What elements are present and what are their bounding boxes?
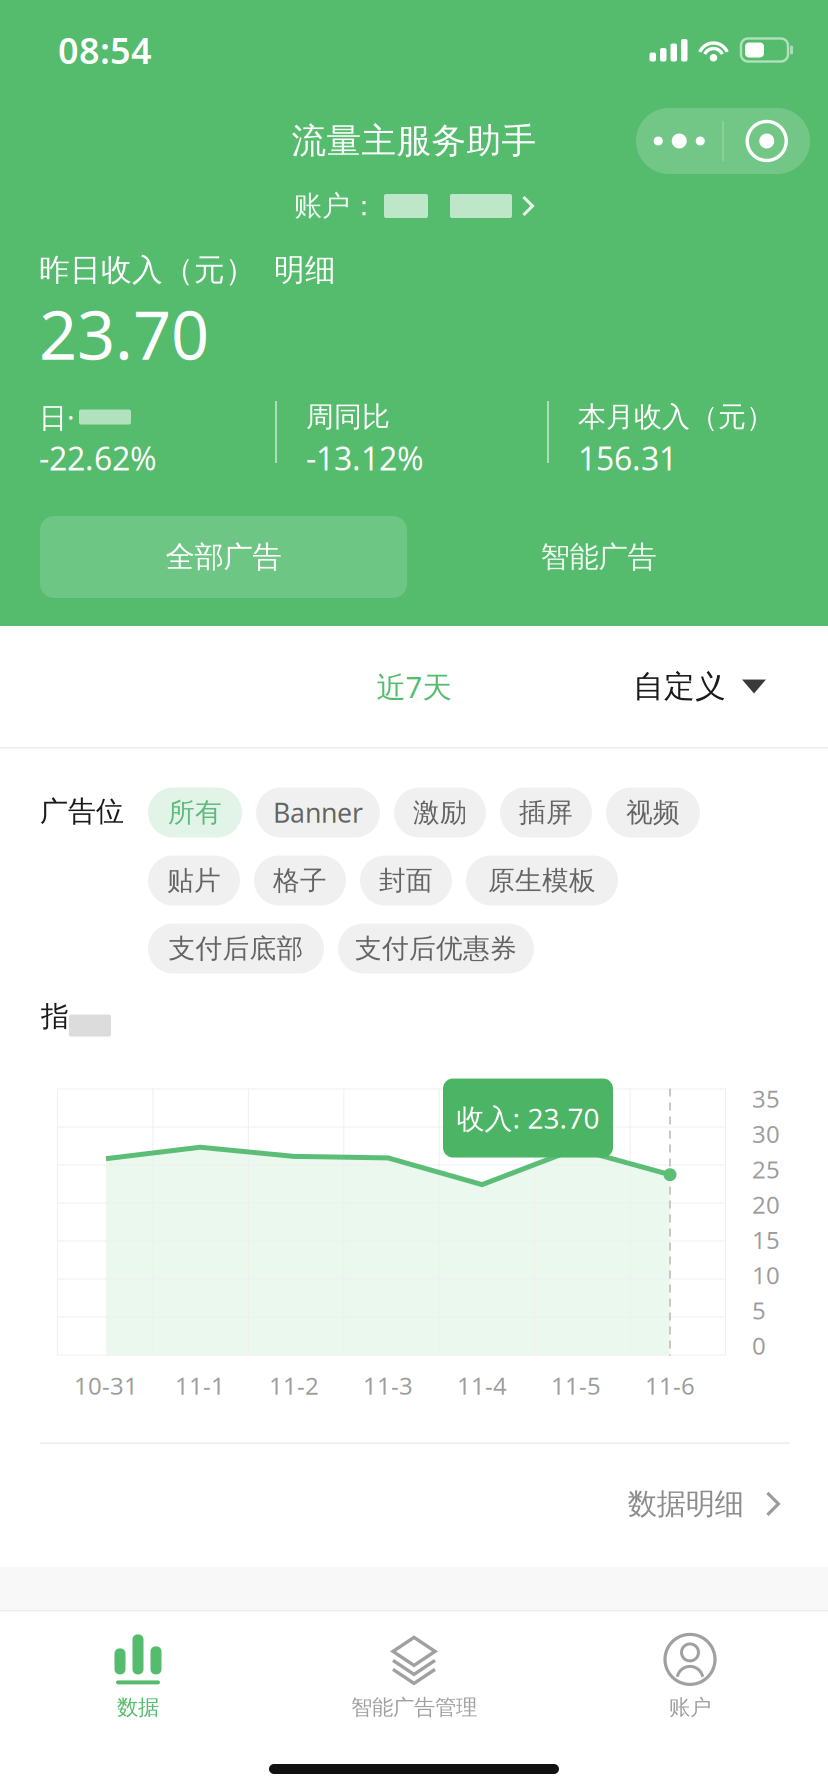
staticText: -22.62% <box>39 437 157 479</box>
staticText: 25 <box>752 1153 780 1185</box>
staticText: 11-4 <box>457 1369 507 1401</box>
button[interactable]: 贴片 <box>148 855 240 905</box>
staticText: 本月收入（元） <box>578 400 774 434</box>
staticText: 15 <box>752 1224 780 1256</box>
staticText: 11-3 <box>363 1369 413 1401</box>
staticText: 0 <box>752 1330 766 1361</box>
button[interactable]: 支付后底部 <box>148 923 324 973</box>
button[interactable]: 原生模板 <box>466 855 618 905</box>
staticText: 数据明细 <box>628 1486 744 1522</box>
button[interactable]: 账户： <box>294 184 534 228</box>
staticText: 明细 <box>274 251 336 289</box>
staticText: Banner <box>273 795 363 830</box>
staticText: 数据 <box>117 1694 159 1721</box>
button[interactable]: 数据 <box>0 1621 276 1733</box>
staticText: 格子 <box>273 864 327 897</box>
button[interactable]: 自定义 <box>633 652 766 721</box>
staticText: 11-5 <box>551 1369 601 1401</box>
staticText: -13.12% <box>306 437 424 479</box>
button[interactable]: 视频 <box>606 787 700 837</box>
button[interactable]: 支付后优惠券 <box>338 923 534 973</box>
staticText: 激励 <box>413 796 467 829</box>
staticText: 35 <box>752 1083 780 1114</box>
staticText: 5 <box>752 1294 766 1326</box>
staticText: 自定义 <box>633 668 726 705</box>
staticText: 日· <box>39 398 75 436</box>
button[interactable]: 插屏 <box>500 787 592 837</box>
button[interactable]: Close mini program <box>724 108 810 174</box>
staticText: 所有 <box>168 796 222 829</box>
staticText: 智能广告管理 <box>351 1694 477 1721</box>
button[interactable]: 所有 <box>148 787 242 837</box>
staticText: 插屏 <box>519 796 573 829</box>
button[interactable]: 激励 <box>394 787 486 837</box>
staticText: 11-1 <box>175 1369 225 1401</box>
staticText: 08:54 <box>58 26 152 74</box>
staticText: 20 <box>752 1188 780 1220</box>
button[interactable]: 全部广告 <box>40 516 407 598</box>
staticText: 贴片 <box>167 864 221 897</box>
staticText: 智能广告 <box>540 539 656 575</box>
staticText: 收入: 23.70 <box>456 1099 599 1137</box>
staticText: 指 <box>41 999 69 1034</box>
button[interactable]: 明细 <box>256 251 342 289</box>
staticText: 支付后底部 <box>168 932 303 965</box>
staticText: 156.31 <box>578 437 677 479</box>
staticText: 10-31 <box>74 1369 138 1401</box>
button[interactable]: 封面 <box>360 855 452 905</box>
staticText: 账户： <box>294 189 378 223</box>
staticText: 原生模板 <box>488 864 596 897</box>
staticText: 全部广告 <box>165 539 281 575</box>
staticText: 广告位 <box>40 794 124 829</box>
staticText: 封面 <box>379 864 433 897</box>
staticText: 昨日收入（元） <box>39 251 256 289</box>
staticText: 流量主服务助手 <box>291 120 536 162</box>
staticText: 视频 <box>626 796 680 829</box>
staticText: 支付后优惠券 <box>355 932 517 965</box>
staticText: 10 <box>752 1259 780 1291</box>
button[interactable]: 格子 <box>254 855 346 905</box>
staticText: 账户 <box>669 1694 711 1721</box>
staticText: 30 <box>752 1118 780 1150</box>
button[interactable]: Banner <box>256 787 380 837</box>
button[interactable]: 智能广告管理 <box>276 1621 552 1733</box>
button[interactable]: 数据明细 <box>0 1444 828 1554</box>
staticText: 11-2 <box>269 1369 319 1401</box>
button[interactable]: More <box>636 108 722 174</box>
button[interactable]: 账户 <box>552 1621 828 1733</box>
staticText: 11-6 <box>645 1369 695 1401</box>
staticText: 周同比 <box>306 400 390 434</box>
button[interactable]: 智能广告 <box>407 516 790 598</box>
staticText: 近7天 <box>376 667 451 706</box>
staticText: 23.70 <box>39 290 209 378</box>
